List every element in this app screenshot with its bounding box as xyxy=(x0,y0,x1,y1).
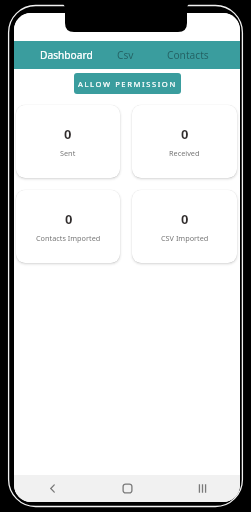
staticText: Dashboard xyxy=(40,48,93,62)
button[interactable]: Contacts xyxy=(149,41,226,69)
staticText: 0 xyxy=(181,125,189,143)
staticText: 0 xyxy=(65,210,73,228)
staticText: CSV Imported xyxy=(161,233,209,243)
button[interactable]: Dashboard xyxy=(30,41,102,69)
staticText: ALLOW PERMISSION xyxy=(78,79,177,89)
staticText: 0 xyxy=(64,125,72,143)
button[interactable]: ALLOW PERMISSION xyxy=(74,73,181,94)
staticText: Contacts Imported xyxy=(36,233,101,243)
button[interactable]: Recents xyxy=(165,475,240,502)
button[interactable]: 0 xyxy=(16,190,120,263)
staticText: Received xyxy=(169,148,200,158)
button[interactable]: Csv xyxy=(102,41,149,69)
button[interactable]: 0 xyxy=(132,190,237,263)
staticText: 0 xyxy=(181,210,189,228)
staticText: Sent xyxy=(60,148,76,158)
staticText: Csv xyxy=(117,48,134,62)
button[interactable]: Back xyxy=(14,475,90,502)
button[interactable]: Home xyxy=(90,475,165,502)
staticText: Contacts xyxy=(167,48,209,62)
button[interactable]: 0 xyxy=(132,105,237,178)
button[interactable]: 0 xyxy=(16,105,120,178)
